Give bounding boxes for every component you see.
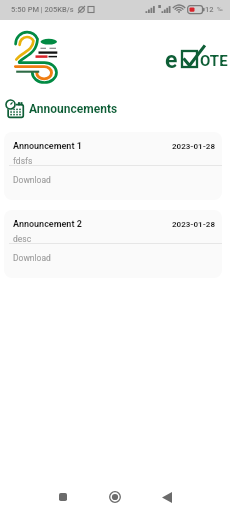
button[interactable]: Back xyxy=(151,482,183,512)
staticText: Download xyxy=(13,253,51,263)
button[interactable]: Home xyxy=(99,482,131,512)
staticText: 2023-01-28 xyxy=(172,220,216,229)
staticText: Announcement 1 xyxy=(13,141,82,152)
staticText: e xyxy=(165,47,178,74)
staticText: 5:50 PM | 205KB/s xyxy=(11,5,74,14)
button[interactable]: Announcement 2 xyxy=(4,210,222,278)
staticText: Announcement 2 xyxy=(13,219,82,230)
staticText: 12 xyxy=(205,5,214,14)
staticText: OTE xyxy=(200,52,228,70)
staticText: 2023-01-28 xyxy=(172,142,216,151)
staticText: fdsfs xyxy=(13,156,33,166)
staticText: Announcements xyxy=(29,102,118,116)
button[interactable]: Announcement 1 xyxy=(4,132,222,200)
staticText: desc xyxy=(13,234,32,244)
staticText: Download xyxy=(13,175,51,185)
button[interactable]: Recents xyxy=(47,482,79,512)
staticText: ‰ xyxy=(217,5,223,12)
